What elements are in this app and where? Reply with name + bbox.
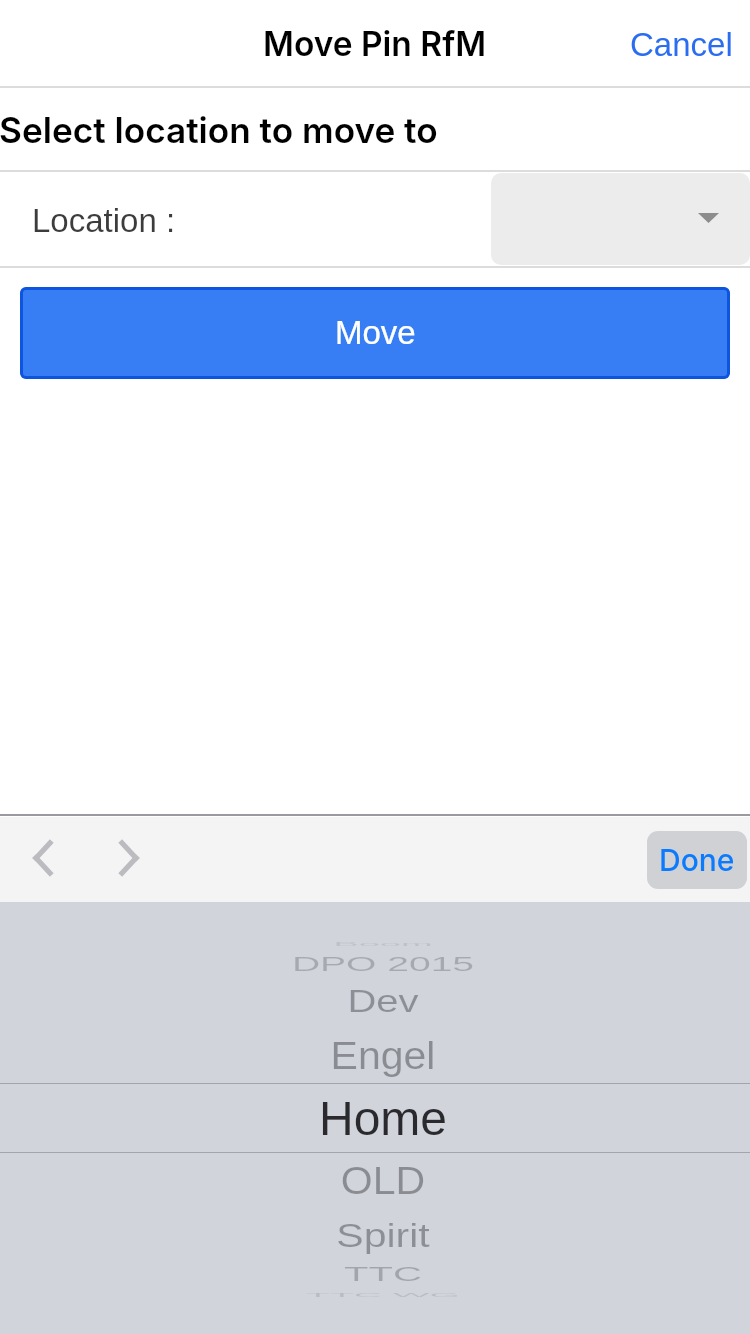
staticText: Dev [8,983,750,1019]
staticText: Location : [32,202,176,239]
staticText: Engel [8,1035,750,1078]
button[interactable]: Cancel [612,13,750,74]
staticText: Move Pin RfM [263,24,487,65]
button[interactable]: Select location [491,173,750,265]
button[interactable]: Next field [86,817,172,902]
staticText: TTC [8,1263,750,1286]
staticText: Spirit [8,1217,750,1254]
staticText: Done [659,842,735,878]
button[interactable]: Previous field [0,817,86,902]
button[interactable]: Move [20,287,730,379]
staticText: DPO 2015 [8,953,750,975]
staticText: Home [8,1092,750,1146]
staticText: Move [335,314,416,351]
staticText: Select location to move to [0,109,438,152]
staticText: TTC WG [8,1291,750,1298]
button[interactable]: Done [647,831,747,889]
staticText: OLD [8,1160,750,1203]
staticText: Cancel [630,26,733,63]
